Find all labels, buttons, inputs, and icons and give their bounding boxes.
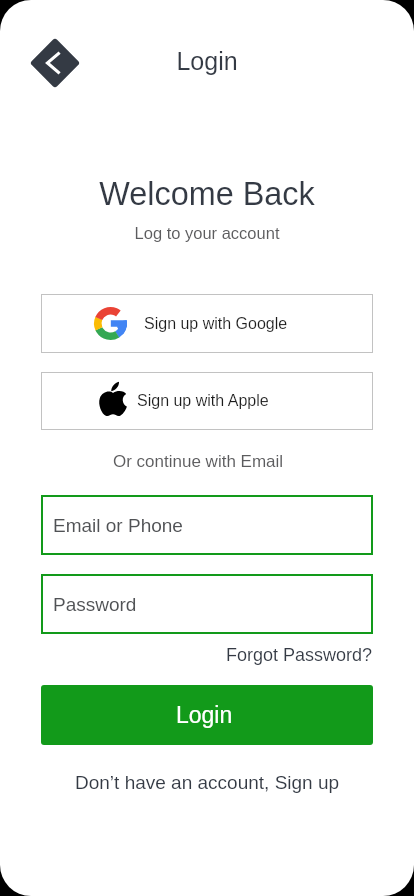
staticText: Login: [0, 47, 414, 75]
staticText: Password: [53, 594, 137, 615]
staticText: Welcome Back: [0, 176, 414, 212]
button[interactable]: Forgot Password?: [41, 645, 373, 665]
button[interactable]: Don’t have an account, Sign up: [0, 772, 414, 793]
button[interactable]: Login: [41, 685, 373, 745]
button[interactable]: Sign up with Google: [41, 294, 373, 353]
staticText: Sign up with Google: [144, 315, 288, 333]
staticText: Email or Phone: [53, 515, 183, 536]
staticText: Or continue with Email: [113, 452, 284, 471]
button[interactable]: Back: [31, 39, 79, 87]
staticText: Forgot Password?: [226, 645, 373, 665]
button[interactable]: Email or Phone: [41, 495, 373, 555]
staticText: Sign up with Apple: [137, 392, 269, 410]
button[interactable]: Sign up with Apple: [41, 372, 373, 430]
button[interactable]: Password: [41, 574, 373, 634]
staticText: Don’t have an account, Sign up: [75, 772, 340, 793]
staticText: Log to your account: [0, 224, 414, 242]
staticText: Login: [176, 702, 233, 728]
